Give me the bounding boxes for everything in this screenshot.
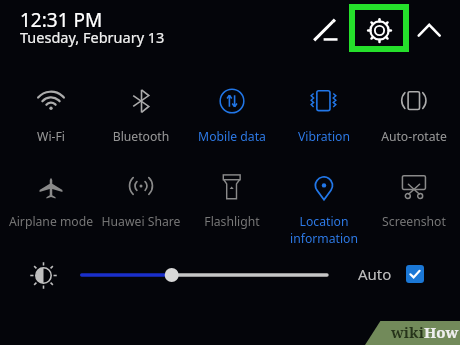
button[interactable]: Auto: [358, 262, 424, 286]
button[interactable]: Edit: [308, 12, 340, 44]
staticText: Vibration: [279, 128, 369, 145]
staticText: wiki: [391, 322, 424, 342]
staticText: Mobile data: [187, 128, 277, 145]
staticText: Airplane mode: [6, 213, 96, 230]
button[interactable]: Collapse: [412, 12, 446, 46]
button[interactable]: Auto-rotate: [369, 89, 459, 166]
staticText: Huawei Share: [96, 213, 186, 230]
button[interactable]: Settings: [355, 10, 403, 46]
button[interactable]: Wi-Fi: [6, 90, 96, 166]
button[interactable]: Bluetooth: [96, 88, 186, 166]
button[interactable]: Location information: [279, 175, 369, 251]
staticText: Location information: [279, 213, 369, 247]
button[interactable]: Brightness slider: [74, 264, 336, 286]
button[interactable]: Brightness: [30, 262, 57, 289]
staticText: Screenshot: [369, 213, 459, 230]
staticText: Auto: [358, 264, 392, 284]
staticText: How: [424, 322, 459, 342]
staticText: Flashlight: [187, 213, 277, 230]
button[interactable]: Huawei Share: [96, 175, 186, 251]
staticText: Bluetooth: [96, 128, 186, 145]
button[interactable]: Vibration: [279, 89, 369, 166]
staticText: Tuesday, February 13: [20, 27, 165, 47]
button[interactable]: Screenshot: [369, 175, 459, 251]
staticText: Wi-Fi: [6, 128, 96, 145]
button[interactable]: Airplane mode: [6, 176, 96, 251]
button[interactable]: Flashlight: [187, 174, 277, 251]
staticText: Auto-rotate: [369, 128, 459, 145]
staticText: 12:31 PM: [20, 7, 103, 33]
button[interactable]: Mobile data: [187, 88, 277, 166]
